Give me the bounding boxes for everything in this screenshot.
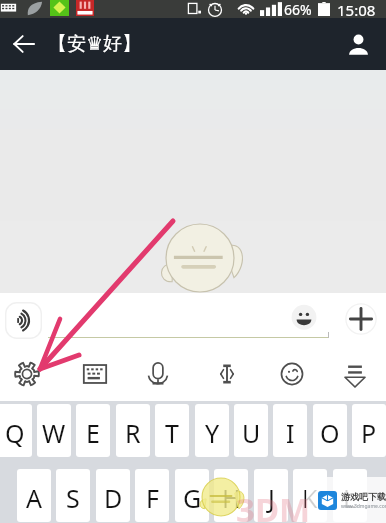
staticText: A <box>26 481 42 515</box>
button[interactable]: Back <box>6 26 42 62</box>
staticText: G <box>183 481 202 515</box>
button[interactable]: W <box>37 404 71 457</box>
staticText: www.3dmgame.com <box>341 503 386 510</box>
button[interactable]: Q <box>0 404 32 457</box>
staticText: P <box>361 416 377 450</box>
staticText: H <box>222 481 241 515</box>
staticText: 15:08 <box>337 0 376 18</box>
button[interactable]: Settings <box>7 354 47 394</box>
staticText: I <box>286 416 295 450</box>
staticText: Q <box>5 416 25 450</box>
staticText: D <box>104 481 123 515</box>
button[interactable]: R <box>116 404 150 457</box>
button[interactable]: S <box>56 469 90 522</box>
button[interactable]: U <box>234 404 268 457</box>
staticText: W <box>42 416 66 450</box>
button[interactable]: Y <box>195 404 229 457</box>
button[interactable]: I <box>273 404 307 457</box>
button[interactable]: Chat information <box>340 26 376 62</box>
button[interactable]: A <box>17 469 51 522</box>
staticText: 游戏吧下载网 <box>341 491 386 502</box>
button[interactable]: D <box>96 469 130 522</box>
staticText: U <box>242 416 261 450</box>
staticText: Y <box>205 416 220 450</box>
button[interactable]: Handwriting input <box>207 354 247 394</box>
button[interactable]: More options <box>343 301 379 337</box>
button[interactable]: Hide keyboard <box>335 354 375 394</box>
button[interactable]: Voice input <box>138 354 178 394</box>
staticText: K <box>302 481 318 515</box>
button[interactable]: J <box>254 469 288 522</box>
button[interactable]: T <box>155 404 189 457</box>
staticText: F <box>146 481 159 515</box>
button[interactable]: H <box>214 469 248 522</box>
staticText: S <box>66 481 80 515</box>
staticText: J <box>268 481 275 515</box>
staticText: 3DM <box>236 487 311 523</box>
button[interactable]: P <box>352 404 386 457</box>
button[interactable]: Emoji <box>286 300 322 336</box>
button[interactable]: K <box>293 469 327 522</box>
staticText: 66% <box>284 0 312 18</box>
staticText: L <box>343 481 357 515</box>
button[interactable]: E <box>76 404 110 457</box>
button[interactable]: L <box>333 469 367 522</box>
staticText: R <box>125 416 141 450</box>
button[interactable]: Keyboard <box>75 354 115 394</box>
button[interactable]: F <box>135 469 169 522</box>
staticText: 【安♛好】 <box>48 32 142 56</box>
button[interactable]: O <box>313 404 347 457</box>
button[interactable]: Voice message <box>5 302 42 339</box>
staticText: T <box>165 416 179 450</box>
staticText: O <box>320 416 340 450</box>
button[interactable]: G <box>175 469 209 522</box>
staticText: E <box>86 416 100 450</box>
button[interactable]: Emoticons <box>272 354 312 394</box>
